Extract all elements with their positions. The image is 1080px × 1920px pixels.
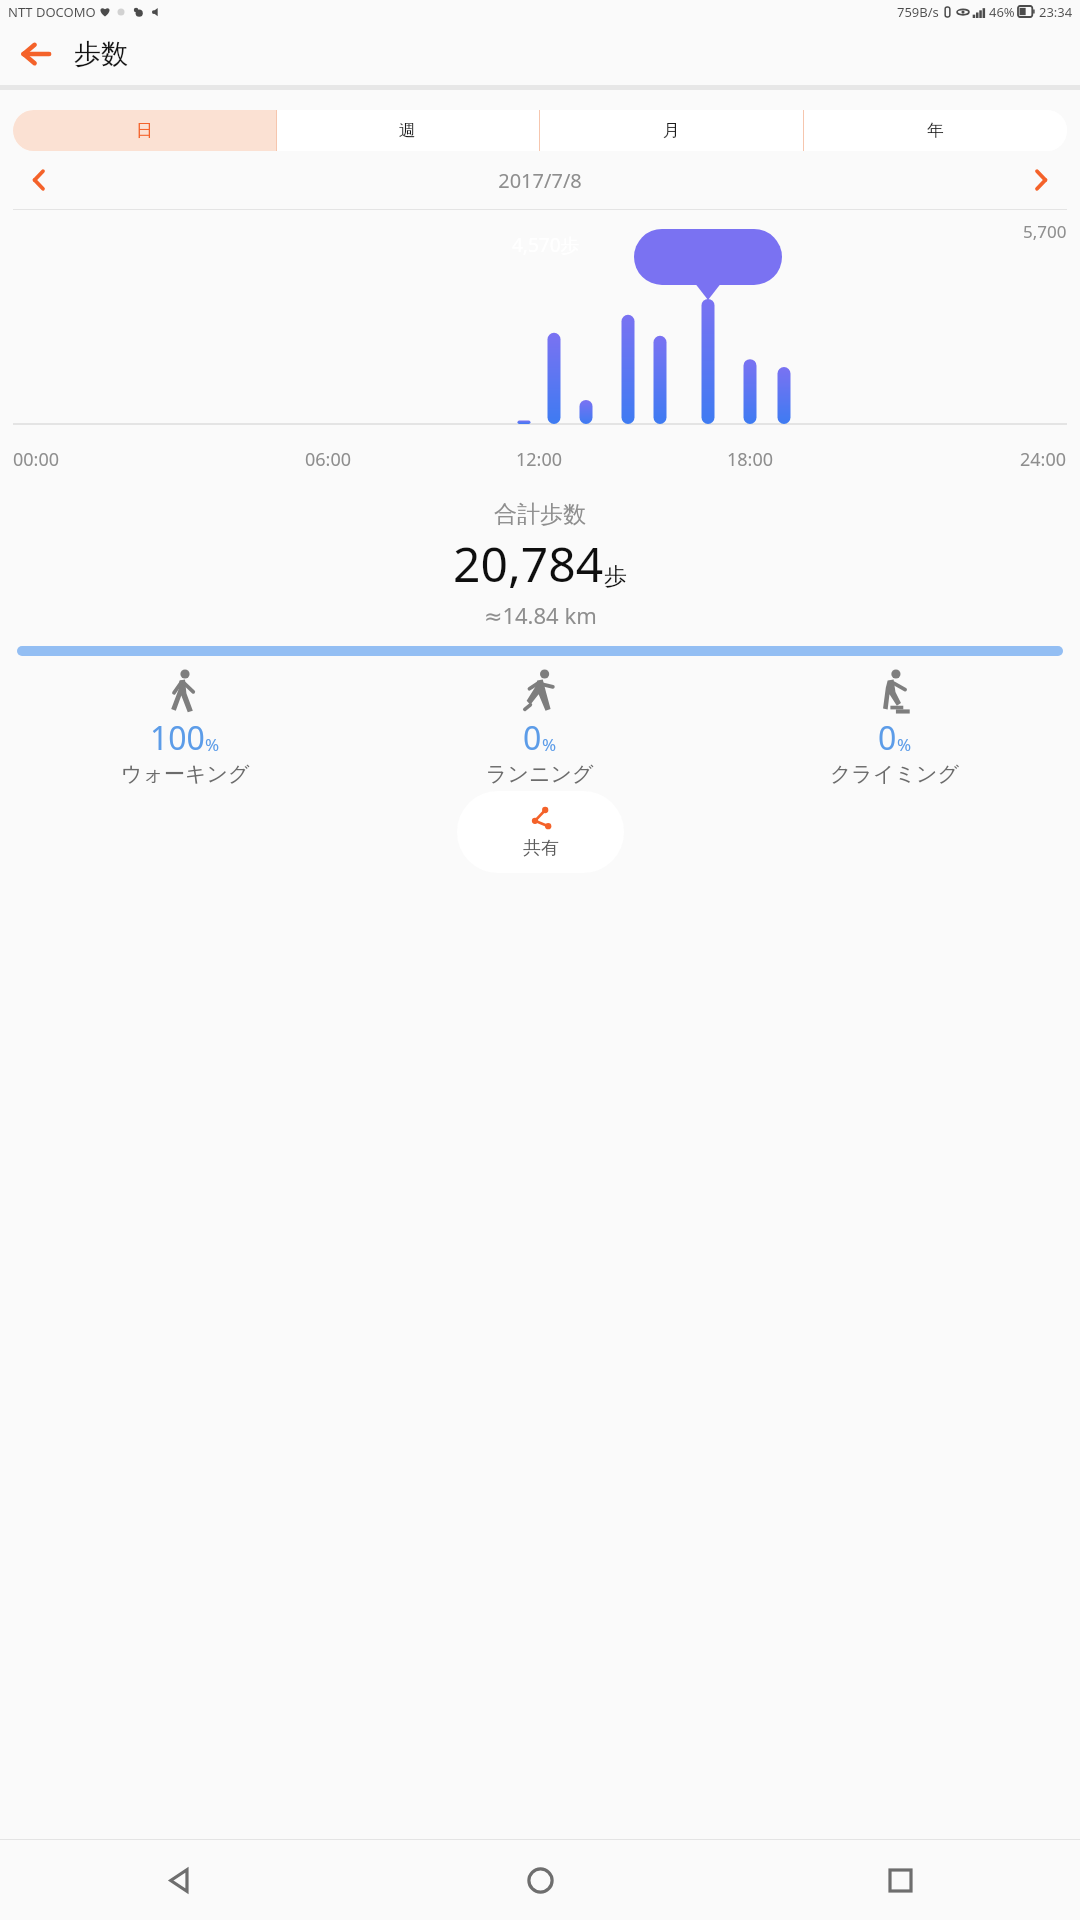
staticText: クライミング bbox=[830, 761, 959, 787]
staticText: 年 bbox=[927, 120, 944, 141]
button[interactable]: 0 bbox=[362, 668, 717, 787]
staticText: 23:34 bbox=[1039, 3, 1073, 21]
staticText: 46% bbox=[989, 3, 1015, 21]
staticText: % bbox=[205, 733, 220, 756]
staticText: 歩 bbox=[604, 562, 627, 591]
staticText: 759B/s bbox=[897, 3, 939, 21]
staticText: % bbox=[897, 733, 912, 756]
button[interactable]: Home bbox=[360, 1840, 720, 1920]
button[interactable]: 年 bbox=[803, 110, 1067, 151]
staticText: ランニング bbox=[486, 761, 594, 787]
staticText: 共有 bbox=[523, 837, 559, 860]
staticText: 24:00 bbox=[1020, 447, 1067, 472]
staticText: 06:00 bbox=[305, 447, 352, 472]
staticText: 0 bbox=[878, 716, 897, 760]
staticText: 合計歩数 bbox=[494, 500, 586, 529]
button[interactable]: 0 bbox=[717, 668, 1072, 787]
staticText: 5,700 bbox=[1023, 220, 1067, 243]
staticText: 歩数 bbox=[74, 37, 128, 71]
button[interactable]: Recents bbox=[720, 1840, 1080, 1920]
staticText: 日 bbox=[136, 120, 153, 141]
staticText: 12:00 bbox=[516, 447, 563, 472]
button[interactable]: 月 bbox=[539, 110, 803, 151]
staticText: 18:00 bbox=[727, 447, 774, 472]
button[interactable]: 共有 bbox=[457, 791, 624, 873]
button[interactable]: Back bbox=[0, 1840, 360, 1920]
staticText: 100 bbox=[150, 716, 205, 760]
button[interactable]: Next day bbox=[1018, 157, 1064, 203]
button[interactable]: 100 bbox=[8, 668, 362, 787]
staticText: 週 bbox=[399, 120, 416, 141]
button[interactable]: Previous day bbox=[16, 157, 62, 203]
staticText: % bbox=[542, 733, 557, 756]
staticText: ウォーキング bbox=[121, 761, 250, 787]
staticText: 月 bbox=[663, 120, 680, 141]
staticText: 00:00 bbox=[13, 447, 60, 472]
staticText: 0 bbox=[523, 716, 542, 760]
button[interactable]: Back bbox=[12, 30, 60, 78]
staticText: 2017/7/8 bbox=[62, 167, 1018, 194]
staticText: ≈14.84 km bbox=[484, 600, 597, 630]
staticText: 20,784 bbox=[453, 531, 604, 596]
button[interactable]: 週 bbox=[276, 110, 539, 151]
staticText: NTT DOCOMO bbox=[8, 3, 96, 21]
button[interactable]: 日 bbox=[13, 110, 276, 151]
